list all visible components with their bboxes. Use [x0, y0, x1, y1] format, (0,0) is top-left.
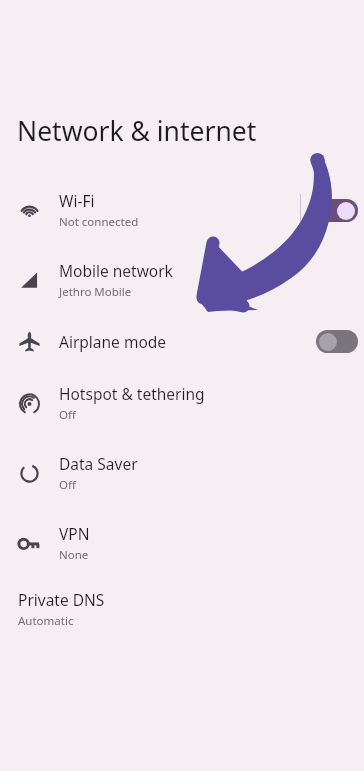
other: Hotspot and tethering — [19, 393, 40, 414]
button[interactable]: Mobile network — [0, 245, 364, 315]
staticText: Off — [59, 407, 76, 423]
other: Wi-Fi — [19, 200, 40, 221]
staticText: Network & internet — [17, 113, 257, 149]
staticText: Data Saver — [59, 453, 138, 474]
staticText: Jethro Mobile — [59, 284, 132, 300]
button[interactable]: Wi-Fi — [0, 175, 364, 245]
staticText: Automatic — [18, 613, 74, 629]
staticText: Wi-Fi — [59, 190, 95, 211]
other: Airplane mode — [19, 331, 40, 352]
button[interactable]: Airplane mode — [0, 315, 364, 368]
staticText: Off — [59, 477, 76, 493]
staticText: Mobile network — [59, 260, 173, 281]
button[interactable]: VPN — [0, 508, 364, 578]
button[interactable]: Toggle off — [316, 330, 358, 353]
other: Mobile network — [19, 270, 40, 291]
button[interactable]: Data Saver — [0, 438, 364, 508]
button[interactable]: Toggle on — [316, 199, 358, 222]
staticText: VPN — [59, 523, 90, 544]
other: Data Saver — [19, 463, 40, 484]
staticText: Airplane mode — [59, 331, 167, 352]
staticText: Not connected — [59, 214, 139, 230]
button[interactable]: Hotspot and tethering — [0, 368, 364, 438]
staticText: Private DNS — [18, 589, 105, 610]
staticText: Hotspot & tethering — [59, 383, 205, 404]
staticText: None — [59, 547, 89, 563]
button[interactable]: Private DNS — [0, 578, 364, 640]
other: VPN — [19, 533, 40, 554]
